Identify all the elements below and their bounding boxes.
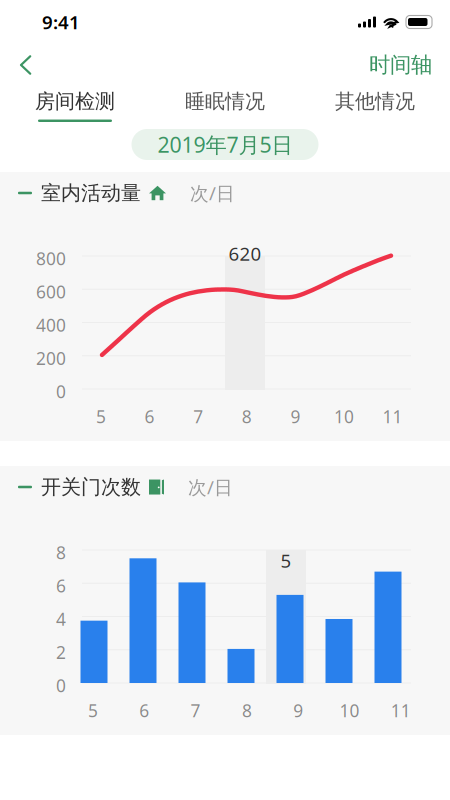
staticText: 10 bbox=[334, 405, 354, 428]
staticText: 7 bbox=[191, 699, 201, 722]
staticText: 11 bbox=[383, 405, 403, 428]
staticText: 8 bbox=[242, 405, 252, 428]
staticText: 8 bbox=[242, 699, 252, 722]
staticText: 7 bbox=[193, 405, 203, 428]
staticText: 9:41 bbox=[42, 10, 80, 34]
staticText: 0 bbox=[56, 674, 66, 697]
staticText: 620 bbox=[228, 241, 261, 266]
staticText: 房间检测 bbox=[35, 89, 115, 113]
staticText: 6 bbox=[56, 574, 66, 597]
staticText: 10 bbox=[339, 699, 359, 722]
staticText: 0 bbox=[56, 380, 66, 403]
button[interactable]: 房间检测 bbox=[0, 86, 150, 122]
button[interactable]: 睡眠情况 bbox=[150, 86, 300, 122]
staticText: 5 bbox=[96, 405, 106, 428]
staticText: 开关门次数 bbox=[41, 475, 141, 499]
staticText: 次/日 bbox=[188, 475, 233, 499]
staticText: 睡眠情况 bbox=[185, 89, 265, 113]
button[interactable]: 其他情况 bbox=[300, 86, 450, 122]
staticText: 4 bbox=[56, 607, 66, 630]
staticText: 600 bbox=[36, 280, 66, 303]
staticText: 9 bbox=[290, 405, 300, 428]
staticText: 8 bbox=[56, 541, 66, 564]
staticText: 9 bbox=[293, 699, 303, 722]
staticText: 其他情况 bbox=[335, 89, 415, 113]
staticText: 次/日 bbox=[190, 181, 235, 205]
staticText: 2 bbox=[56, 641, 66, 664]
staticText: 800 bbox=[36, 247, 66, 270]
button[interactable]: 2019年7月5日 bbox=[131, 129, 318, 160]
button[interactable]: Back bbox=[0, 44, 45, 86]
staticText: 时间轴 bbox=[369, 52, 432, 78]
staticText: 11 bbox=[391, 699, 411, 722]
staticText: 5 bbox=[88, 699, 98, 722]
staticText: 2019年7月5日 bbox=[157, 130, 292, 159]
staticText: 400 bbox=[36, 313, 66, 336]
staticText: 5 bbox=[280, 548, 291, 573]
button[interactable]: 时间轴 bbox=[351, 44, 450, 86]
staticText: 室内活动量 bbox=[41, 181, 141, 205]
staticText: 200 bbox=[36, 347, 66, 370]
staticText: 6 bbox=[139, 699, 149, 722]
staticText: 6 bbox=[145, 405, 155, 428]
